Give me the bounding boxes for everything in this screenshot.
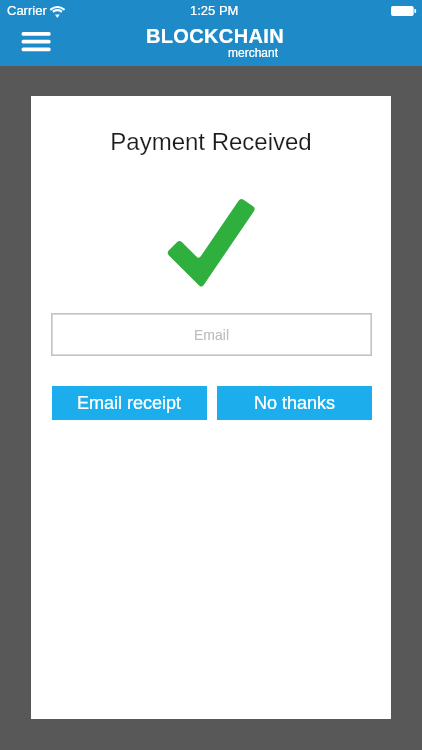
button[interactable]: No thanks <box>217 386 372 420</box>
staticText: Email receipt <box>77 393 182 413</box>
staticText: merchant <box>228 46 279 59</box>
staticText: 1:25 PM <box>190 3 239 18</box>
staticText: Email <box>194 327 230 343</box>
button[interactable]: Open navigation menu <box>14 25 58 57</box>
staticText: No thanks <box>254 393 336 413</box>
button[interactable]: Email receipt <box>52 386 207 420</box>
button[interactable]: Email <box>51 313 372 356</box>
other: Wi-Fi <box>48 3 67 17</box>
staticText: BLOCKCHAIN <box>146 25 284 47</box>
staticText: Carrier <box>7 3 47 18</box>
staticText: Payment Received <box>31 128 391 155</box>
other: Battery <box>391 6 416 16</box>
